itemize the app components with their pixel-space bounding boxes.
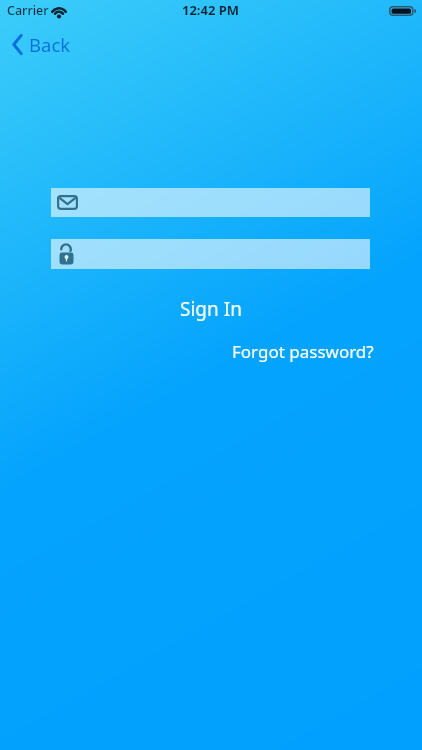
staticText: 12:42 PM (182, 1, 240, 19)
staticText: Carrier (7, 2, 49, 19)
staticText: Sign In (180, 296, 242, 322)
button[interactable]: Back (6, 30, 77, 59)
button[interactable]: Forgot password? (230, 340, 376, 363)
button[interactable] (51, 239, 370, 269)
staticText: Back (29, 32, 71, 57)
staticText: Forgot password? (232, 340, 374, 363)
button[interactable]: Sign In (176, 296, 246, 322)
button[interactable] (51, 188, 370, 217)
